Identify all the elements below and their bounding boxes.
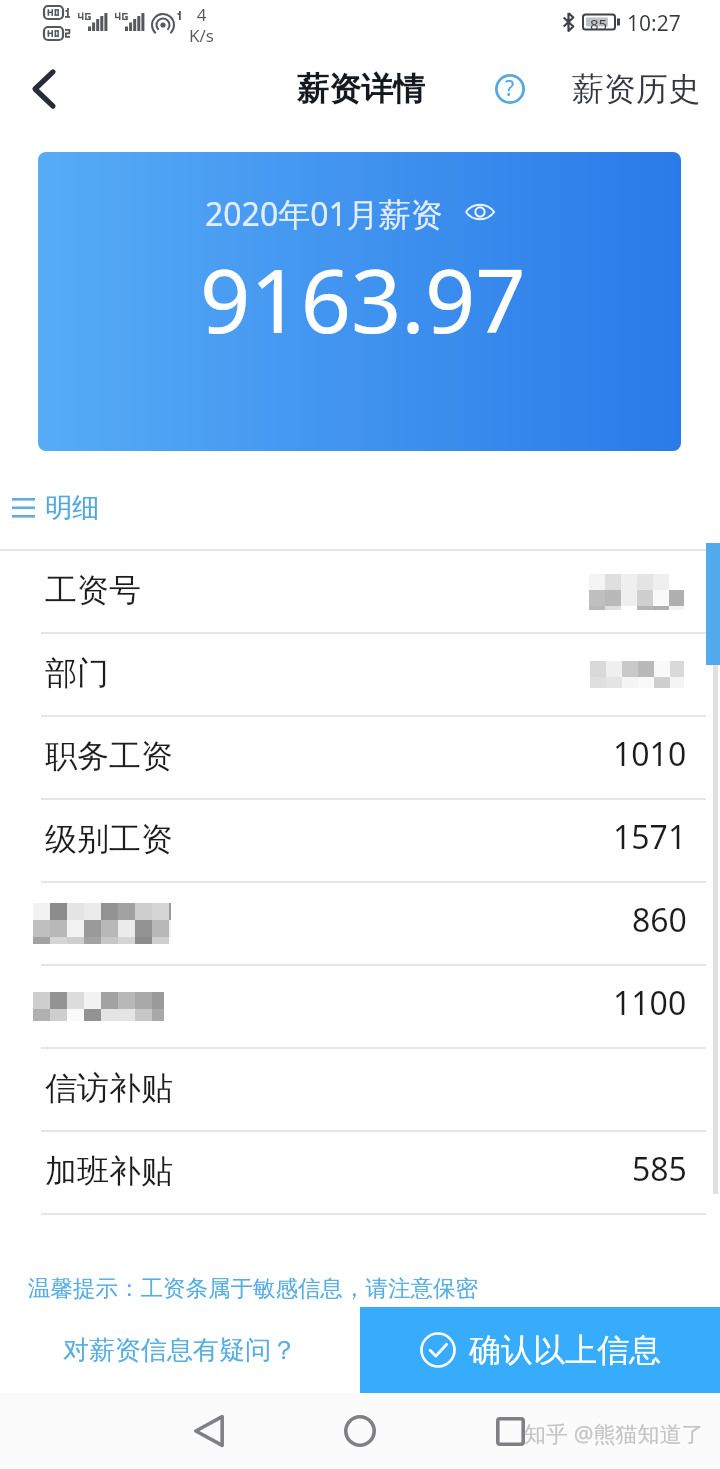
button[interactable]: Back	[15, 60, 73, 118]
staticText: 585	[632, 1147, 687, 1191]
button[interactable]: Back	[182, 1404, 236, 1458]
button[interactable]: Help	[495, 74, 525, 104]
staticText: 1010	[613, 732, 687, 776]
button[interactable]: 职务工资	[0, 717, 720, 798]
staticText: 1571	[613, 815, 687, 859]
staticText: 4 K/s	[189, 3, 214, 47]
staticText: 10:27	[627, 9, 681, 38]
button[interactable]: 工资号	[0, 551, 720, 632]
button[interactable]: 部门	[0, 634, 720, 715]
staticText: 1100	[613, 981, 687, 1025]
staticText: 对薪资信息有疑问？	[63, 1334, 297, 1367]
staticText: 级别工资	[45, 819, 173, 859]
button[interactable]: 1100	[0, 966, 720, 1047]
staticText: 加班补贴	[45, 1151, 173, 1191]
staticText: 信访补贴	[45, 1068, 173, 1108]
staticText: 明细	[45, 491, 99, 525]
button[interactable]: 明细	[12, 491, 99, 525]
staticText: 职务工资	[45, 736, 173, 776]
button[interactable]: Recents	[483, 1404, 537, 1458]
staticText: 知乎 @熊猫知道了	[524, 1418, 704, 1448]
staticText: 85	[590, 14, 608, 34]
button[interactable]: 加班补贴	[0, 1132, 720, 1213]
staticText: 工资号	[45, 570, 141, 610]
button[interactable]: 确认以上信息	[360, 1307, 720, 1393]
button[interactable]: 级别工资	[0, 800, 720, 881]
staticText: 部门	[45, 653, 109, 693]
staticText: ?	[505, 74, 515, 103]
button[interactable]: 860	[0, 883, 720, 964]
button[interactable]: 信访补贴	[0, 1049, 720, 1130]
staticText: 9163.97	[200, 239, 526, 359]
staticText: 薪资详情	[297, 69, 425, 109]
staticText: 2020年01月薪资	[205, 192, 443, 236]
staticText: 确认以上信息	[469, 1330, 661, 1370]
button[interactable]: 2020年01月薪资	[38, 152, 681, 451]
button[interactable]: 对薪资信息有疑问？	[0, 1307, 360, 1393]
button[interactable]: Toggle salary visibility	[465, 197, 495, 227]
button[interactable]: Home	[333, 1404, 387, 1458]
button[interactable]: 薪资历史	[572, 69, 700, 109]
staticText: 温馨提示：工资条属于敏感信息，请注意保密	[28, 1274, 478, 1302]
staticText: 860	[632, 898, 687, 942]
